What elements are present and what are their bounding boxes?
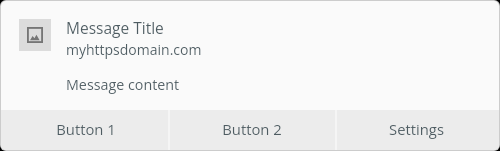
button[interactable]: Button 1 <box>1 110 167 150</box>
other: Site image <box>19 19 51 51</box>
button[interactable]: Settings <box>333 110 499 150</box>
button[interactable]: Button 2 <box>167 110 333 150</box>
staticText: Button 1 <box>56 119 116 139</box>
staticText: myhttpsdomain.com <box>66 40 202 59</box>
staticText: Message content <box>66 75 180 94</box>
staticText: Button 2 <box>222 119 282 139</box>
staticText: Settings <box>389 119 444 139</box>
staticText: Message Title <box>66 17 164 38</box>
